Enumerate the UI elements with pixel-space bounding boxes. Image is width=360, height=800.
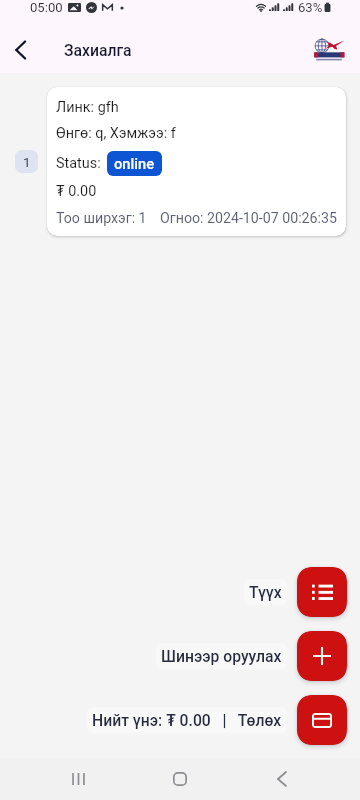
button[interactable]: Home bbox=[158, 758, 202, 800]
staticText: Линк: gfh bbox=[56, 99, 119, 116]
staticText: Өнгө: q, Хэмжээ: f bbox=[56, 125, 176, 142]
staticText: Status: bbox=[56, 155, 101, 172]
staticText: online bbox=[114, 155, 155, 172]
staticText: Огноо: 2024-10-07 00:26:35 bbox=[160, 210, 337, 227]
staticText: Нийт үнэ: ₮ 0.00 | Төлөх bbox=[92, 711, 282, 729]
button[interactable]: Төлөх bbox=[297, 695, 347, 745]
button[interactable]: Back bbox=[0, 27, 40, 73]
staticText: ₮ 0.00 bbox=[56, 183, 97, 200]
staticText: Түүх bbox=[249, 583, 282, 601]
staticText: 1 bbox=[23, 154, 31, 170]
staticText: Захиалга bbox=[64, 41, 132, 59]
button[interactable]: Түүх bbox=[297, 567, 347, 617]
staticText: 63% bbox=[298, 0, 323, 15]
button[interactable]: Recent apps bbox=[56, 758, 100, 800]
button[interactable]: Company logo bbox=[313, 39, 345, 62]
staticText: Тоо ширхэг: 1 bbox=[56, 210, 147, 227]
button[interactable]: Шинээр оруулах bbox=[297, 631, 347, 681]
staticText: Шинээр оруулах bbox=[161, 647, 282, 665]
staticText: 05:00 bbox=[30, 0, 63, 15]
button[interactable]: Линк: gfh bbox=[47, 87, 346, 236]
button[interactable]: Back bbox=[260, 758, 304, 800]
